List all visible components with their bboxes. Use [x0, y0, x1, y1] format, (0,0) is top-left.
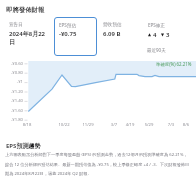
button[interactable]: EPS預估 [54, 17, 97, 56]
staticText: 8/18 [21, 122, 33, 128]
button[interactable]: EPS修正 [143, 17, 192, 46]
staticText: -¥1.80 [0, 117, 23, 123]
button[interactable]: 營收預估 [98, 17, 145, 46]
staticText: 11/29 [82, 122, 94, 128]
staticText: 4 [153, 31, 157, 39]
staticText: 7/3 [165, 122, 177, 128]
staticText: -¥1 [0, 79, 23, 85]
staticText: -¥1.40 [0, 98, 23, 104]
staticText: -¥0.75 [59, 30, 77, 38]
staticText: EPS修正 [148, 22, 166, 28]
staticText: 宣告日 [9, 22, 23, 28]
staticText: 3 [166, 31, 170, 39]
staticText: 5/29 [143, 122, 155, 128]
staticText: 最近90天 [147, 47, 166, 53]
button[interactable]: EPS預測趨勢 [5, 141, 42, 151]
button[interactable]: 即將發佈財報 [5, 5, 46, 15]
staticText: -¥1.60 [0, 108, 23, 114]
staticText: EPS預測趨勢 [6, 142, 41, 150]
staticText: EPS預估 [59, 22, 77, 28]
staticText: 2024年8月22日 [9, 30, 49, 45]
staticText: -¥0.80 [0, 70, 23, 76]
staticText: 即將發佈財報 [6, 6, 45, 14]
staticText: -¥1.20 [0, 89, 23, 95]
staticText: 4/19 [124, 122, 136, 128]
staticText: 10/22 [58, 122, 70, 128]
staticText: 上方圖表顯示分析師對下一季度每股盈餘 (EPS) 的預測走勢，過去12個月的預測… [5, 152, 191, 176]
staticText: 營收預估 [103, 22, 122, 28]
staticText: 3/7 [108, 122, 120, 128]
staticText: 6.09 B [103, 30, 121, 38]
button[interactable]: 宣告日 [4, 17, 49, 46]
staticText: -¥0.60 [0, 61, 23, 67]
staticText: 準確度(%) 62.21% [156, 61, 192, 67]
staticText: 8/6 [180, 122, 192, 128]
